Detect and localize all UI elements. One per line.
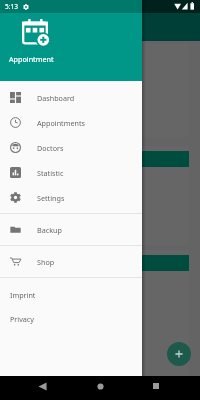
button[interactable]: Recents xyxy=(146,376,166,396)
button[interactable]: Dashboard xyxy=(0,85,142,110)
button[interactable]: Doctors xyxy=(0,135,142,160)
staticText: Statistic xyxy=(37,168,64,178)
staticText: Shop xyxy=(37,257,55,267)
button[interactable]: Appointments xyxy=(0,110,142,135)
staticText: 5:13 xyxy=(5,2,18,11)
staticText: Appointment xyxy=(9,54,54,64)
button[interactable]: Back xyxy=(32,376,52,396)
button[interactable]: Backup xyxy=(0,214,142,245)
button[interactable]: Add appointment xyxy=(167,342,191,366)
staticText: Dashboard xyxy=(37,93,75,103)
staticText: Privacy xyxy=(10,314,34,324)
button[interactable]: Home xyxy=(90,376,110,396)
staticText: Backup xyxy=(37,225,62,235)
staticText: Doctors xyxy=(37,143,64,153)
button[interactable]: Settings xyxy=(0,185,142,210)
button[interactable]: Privacy xyxy=(0,307,142,331)
button[interactable]: Imprint xyxy=(0,283,142,307)
button[interactable]: Shop xyxy=(0,246,142,277)
button[interactable]: Statistic xyxy=(0,160,142,185)
staticText: Appointments xyxy=(37,118,85,128)
staticText: Imprint xyxy=(10,290,36,300)
staticText: Settings xyxy=(37,193,65,203)
